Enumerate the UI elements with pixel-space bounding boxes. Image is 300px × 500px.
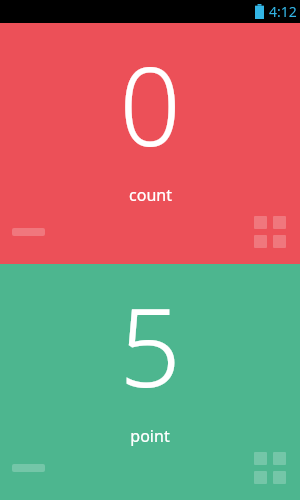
button[interactable]: 0 <box>0 23 300 264</box>
other: Battery <box>255 4 264 19</box>
staticText: 4:12 <box>269 2 297 21</box>
button[interactable]: Grid menu <box>254 216 286 248</box>
staticText: 0 <box>119 31 181 178</box>
button[interactable]: Grid menu <box>254 452 286 484</box>
staticText: 5 <box>119 272 181 419</box>
button[interactable]: Reset <box>12 228 45 236</box>
staticText: point <box>130 425 170 447</box>
staticText: count <box>129 184 172 206</box>
button[interactable]: Reset <box>12 464 45 472</box>
button[interactable]: 5 <box>0 264 300 500</box>
